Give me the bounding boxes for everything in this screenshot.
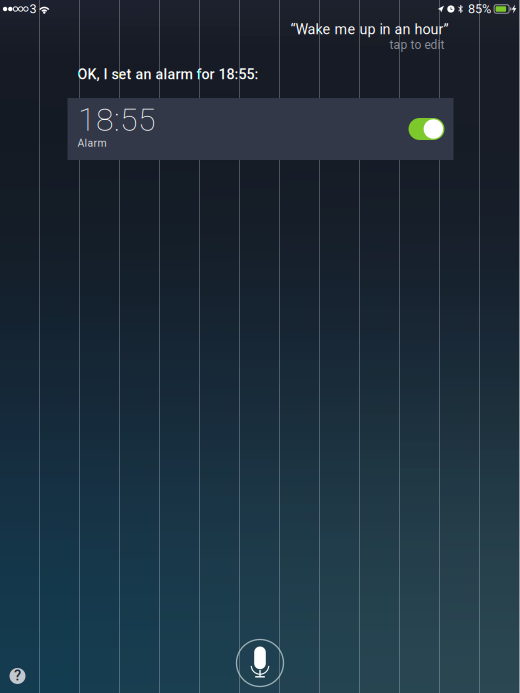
button[interactable]: Microphone <box>236 639 284 687</box>
staticText: 85% <box>468 2 491 16</box>
button[interactable]: 18:55 <box>67 98 453 160</box>
staticText: 18:55 <box>78 101 156 138</box>
staticText: Alarm <box>77 137 106 149</box>
staticText: ? <box>14 667 21 684</box>
button[interactable]: Alarm on <box>408 118 444 140</box>
staticText: “Wake me up in an hour” <box>290 21 448 38</box>
staticText: tap to edit <box>389 38 444 52</box>
button[interactable]: Help <box>9 668 25 684</box>
staticText: 3 <box>29 2 36 16</box>
button[interactable]: “Wake me up in an hour” <box>290 21 447 52</box>
staticText: OK, I set an alarm for 18:55: <box>77 66 258 83</box>
